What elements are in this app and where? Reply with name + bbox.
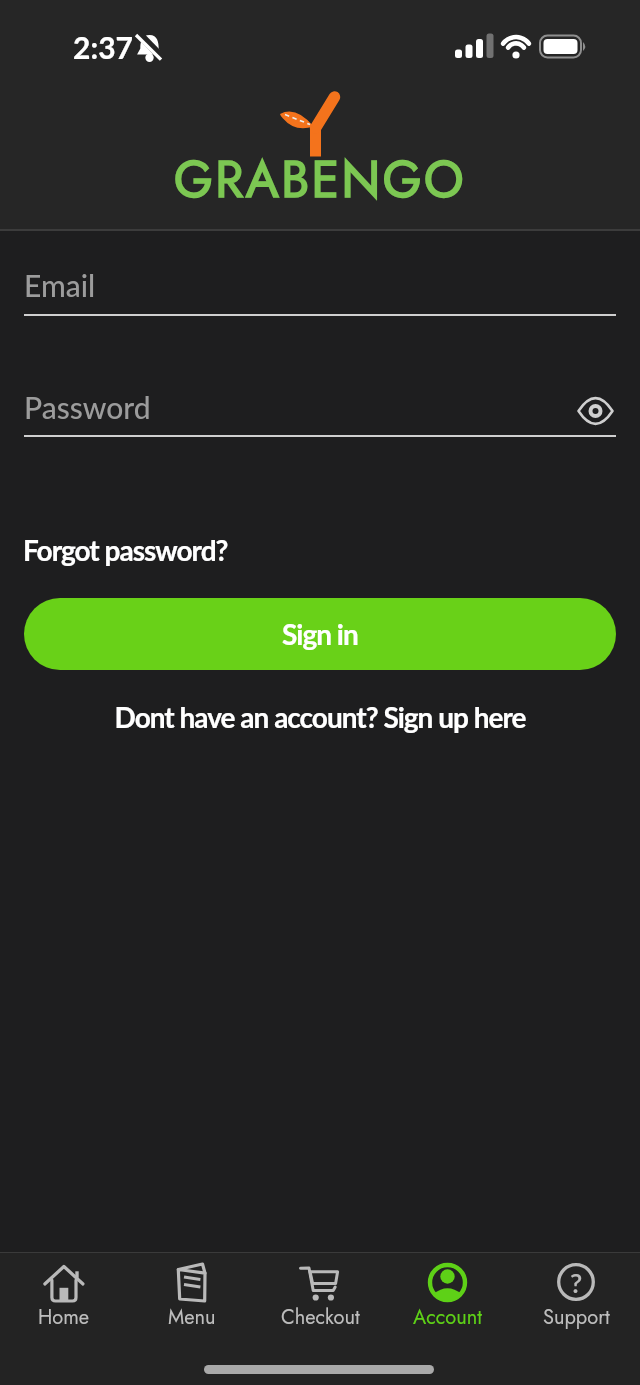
- button[interactable]: ?: [512, 1261, 640, 1332]
- button[interactable]: Sign in: [24, 598, 616, 670]
- button[interactable]: Forgot password?: [23, 533, 228, 567]
- button[interactable]: Menu: [128, 1261, 256, 1332]
- staticText: GRABENGO: [0, 143, 640, 215]
- button[interactable]: Account: [384, 1261, 512, 1332]
- staticText: Account: [413, 1303, 483, 1332]
- staticText: Password: [24, 389, 151, 425]
- staticText: Home: [38, 1303, 90, 1332]
- staticText: Email: [24, 267, 96, 303]
- staticText: Checkout: [281, 1303, 360, 1332]
- button[interactable]: Dont have an account? Sign up here: [0, 700, 640, 734]
- staticText: 2:37: [73, 29, 133, 65]
- button[interactable]: Checkout: [256, 1261, 384, 1332]
- staticText: Support: [543, 1303, 610, 1332]
- staticText: ?: [570, 1266, 583, 1298]
- staticText: Sign in: [282, 617, 358, 651]
- button[interactable]: Home: [0, 1261, 128, 1332]
- staticText: Menu: [168, 1303, 216, 1332]
